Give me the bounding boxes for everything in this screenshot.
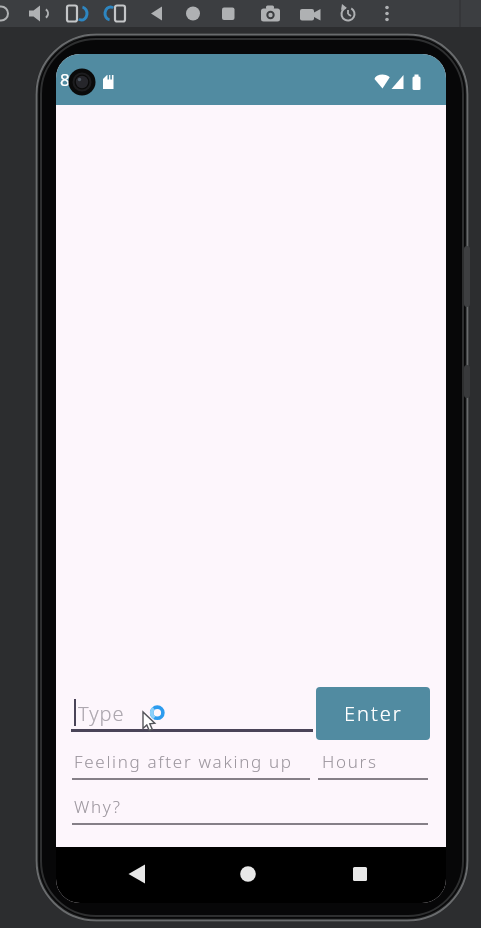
staticText: Why? — [74, 795, 122, 818]
staticText: 8:00 — [60, 68, 94, 91]
staticText: Feeling after waking up — [74, 750, 293, 773]
staticText: Enter — [344, 700, 403, 727]
staticText: Hours — [322, 750, 378, 773]
button[interactable]: Enter — [316, 687, 430, 740]
staticText: Type — [78, 700, 125, 727]
